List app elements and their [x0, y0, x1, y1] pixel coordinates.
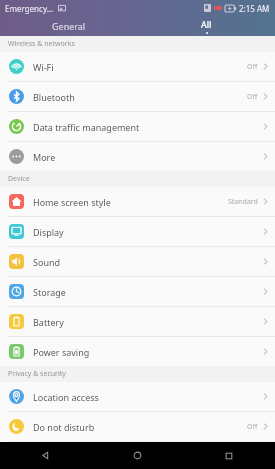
staticText: More: [33, 151, 263, 163]
button[interactable]: Battery: [0, 307, 275, 336]
staticText: Battery: [33, 316, 263, 328]
button[interactable]: Sound: [0, 247, 275, 276]
staticText: Display: [33, 226, 263, 238]
staticText: 2:15 AM: [239, 3, 270, 14]
staticText: Off: [247, 422, 258, 432]
staticText: Emergency...: [5, 3, 54, 14]
staticText: Off: [247, 62, 258, 72]
staticText: Data traffic management: [33, 121, 263, 133]
staticText: Wi-Fi: [33, 61, 247, 73]
button[interactable]: Home screen style: [0, 187, 275, 216]
button[interactable]: Location access: [0, 382, 275, 411]
staticText: Off: [247, 92, 258, 102]
button[interactable]: Do not disturb: [0, 412, 275, 441]
staticText: Storage: [33, 286, 263, 298]
button[interactable]: Home: [91, 442, 183, 469]
button[interactable]: Data traffic management: [0, 112, 275, 141]
staticText: Wireless & networks: [8, 39, 75, 49]
button[interactable]: Back: [0, 442, 91, 469]
button[interactable]: Recent apps: [183, 442, 275, 469]
button[interactable]: More: [0, 142, 275, 171]
staticText: Location access: [33, 391, 263, 403]
button[interactable]: Wi-Fi: [0, 52, 275, 81]
staticText: Bluetooth: [33, 91, 247, 103]
staticText: Standard: [228, 197, 258, 207]
staticText: Sound: [33, 256, 263, 268]
staticText: Device: [8, 174, 30, 184]
staticText: Home screen style: [33, 196, 228, 208]
staticText: All: [201, 18, 212, 30]
button[interactable]: General: [0, 16, 137, 36]
button[interactable]: Display: [0, 217, 275, 246]
button[interactable]: All: [137, 16, 275, 36]
staticText: General: [52, 20, 86, 32]
button[interactable]: Storage: [0, 277, 275, 306]
staticText: Privacy & security: [8, 369, 66, 379]
button[interactable]: Bluetooth: [0, 82, 275, 111]
staticText: Power saving: [33, 346, 263, 358]
staticText: Do not disturb: [33, 421, 247, 433]
button[interactable]: Power saving: [0, 337, 275, 366]
